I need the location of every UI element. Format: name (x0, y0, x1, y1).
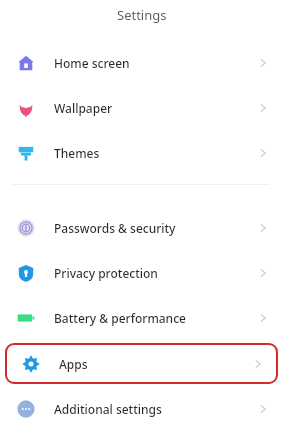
staticText: Privacy protection (54, 265, 158, 281)
staticText: Settings (117, 6, 167, 24)
button[interactable]: Themes (0, 130, 283, 175)
button[interactable]: Wallpaper (0, 85, 283, 130)
button[interactable]: Home screen (0, 40, 283, 85)
button[interactable]: Apps (5, 343, 278, 384)
button[interactable]: Battery & performance (0, 295, 283, 340)
staticText: Additional settings (54, 401, 162, 417)
staticText: Home screen (54, 55, 130, 71)
staticText: Battery & performance (54, 310, 186, 326)
button[interactable]: Passwords & security (0, 205, 283, 250)
staticText: Themes (54, 145, 100, 161)
button[interactable]: Privacy protection (0, 250, 283, 295)
staticText: Apps (59, 356, 88, 372)
staticText: Passwords & security (54, 220, 176, 236)
button[interactable]: Additional settings (0, 386, 283, 431)
staticText: Wallpaper (54, 100, 113, 116)
